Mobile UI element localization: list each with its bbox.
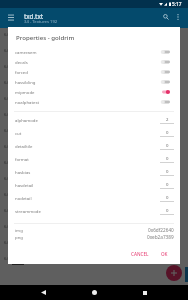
staticText: Raster (28, 52, 40, 57)
staticText: 64 (4, 144, 9, 150)
button[interactable]: streammode (8, 204, 180, 217)
staticText: detailtile (15, 143, 33, 149)
button[interactable]: mipmode (8, 87, 180, 97)
staticText: nodetail (15, 195, 32, 201)
staticText: Raster (28, 36, 40, 41)
button[interactable]: alphamode (8, 113, 180, 126)
staticText: 64 (4, 176, 9, 182)
button[interactable]: noalphatest (8, 97, 180, 107)
staticText: Raster (28, 260, 40, 265)
staticText: forced (15, 69, 28, 75)
staticText: hasdetail (15, 182, 34, 188)
staticText: format (15, 156, 29, 162)
staticText: Raster (28, 116, 40, 121)
staticText: 64 (4, 208, 9, 214)
staticText: Raster (28, 180, 40, 185)
staticText: 0 (166, 194, 169, 200)
staticText: texture_name (28, 173, 57, 179)
staticText: 64 (4, 160, 9, 166)
button[interactable]: Back (36, 285, 51, 300)
button[interactable]: OK (158, 249, 171, 259)
button[interactable]: Search (159, 10, 173, 24)
button[interactable]: CANCEL (128, 249, 152, 259)
staticText: 2 (166, 116, 169, 122)
staticText: cameraem (15, 49, 37, 55)
staticText: 64 (4, 96, 9, 102)
staticText: txd.txt (24, 12, 44, 20)
staticText: 64 (4, 192, 9, 198)
button[interactable]: forced (8, 67, 180, 77)
staticText: 0xeb2a7389 (147, 234, 174, 240)
staticText: Raster (28, 100, 40, 105)
staticText: 64 (4, 112, 9, 118)
staticText: cut (15, 130, 22, 136)
staticText: 0x6df22640 (148, 227, 174, 233)
staticText: texture_name (28, 141, 57, 147)
staticText: img (15, 227, 23, 233)
staticText: 0 (166, 155, 169, 161)
staticText: texture_name (28, 205, 57, 211)
button[interactable]: Add (166, 265, 182, 281)
staticText: 0 (166, 207, 169, 213)
staticText: hasbias (15, 169, 31, 175)
staticText: 64 (4, 128, 9, 134)
button[interactable]: Recent apps (137, 285, 152, 300)
staticText: hassibling (15, 79, 36, 85)
staticText: 0 (166, 142, 169, 148)
staticText: 64 (4, 80, 9, 86)
staticText: 0 (166, 168, 169, 174)
button[interactable]: cut (8, 126, 180, 139)
staticText: Properties - goldrim (16, 33, 75, 41)
staticText: noalphatest (15, 99, 40, 105)
button[interactable]: nodetail (8, 191, 180, 204)
button[interactable]: format (8, 152, 180, 165)
staticText: decals (15, 59, 28, 65)
staticText: 0 (166, 129, 169, 135)
staticText: CANCEL (131, 251, 149, 257)
staticText: Raster (28, 212, 40, 217)
button[interactable]: hassibling (8, 77, 180, 87)
staticText: texture_name (28, 77, 57, 83)
staticText: png (15, 234, 23, 240)
button[interactable]: hasbias (8, 165, 180, 178)
staticText: 5:17 (172, 1, 182, 8)
staticText: 34 - Textures 192 (24, 19, 58, 25)
staticText: 64 (4, 64, 9, 70)
staticText: texture_name (28, 109, 57, 115)
staticText: 64 (4, 32, 9, 38)
staticText: OK (161, 251, 168, 257)
staticText: texture_name (28, 93, 57, 99)
staticText: Raster (28, 84, 40, 89)
staticText: texture_name (28, 221, 57, 227)
button[interactable]: Open navigation menu (4, 10, 18, 24)
staticText: 64 (4, 256, 9, 262)
staticText: 64 (4, 48, 9, 54)
staticText: 0 (166, 181, 169, 187)
staticText: Raster (28, 196, 40, 201)
button[interactable]: cameraem (8, 47, 180, 57)
staticText: 64 (4, 224, 9, 230)
staticText: 64 (4, 240, 9, 246)
button[interactable]: hasdetail (8, 178, 180, 191)
staticText: streammode (15, 208, 41, 214)
button[interactable]: detailtile (8, 139, 180, 152)
staticText: alphamode (15, 117, 38, 123)
staticText: mipmode (15, 89, 35, 95)
button[interactable]: More options (172, 11, 184, 23)
button[interactable]: decals (8, 57, 180, 67)
button[interactable]: Home (87, 285, 102, 300)
